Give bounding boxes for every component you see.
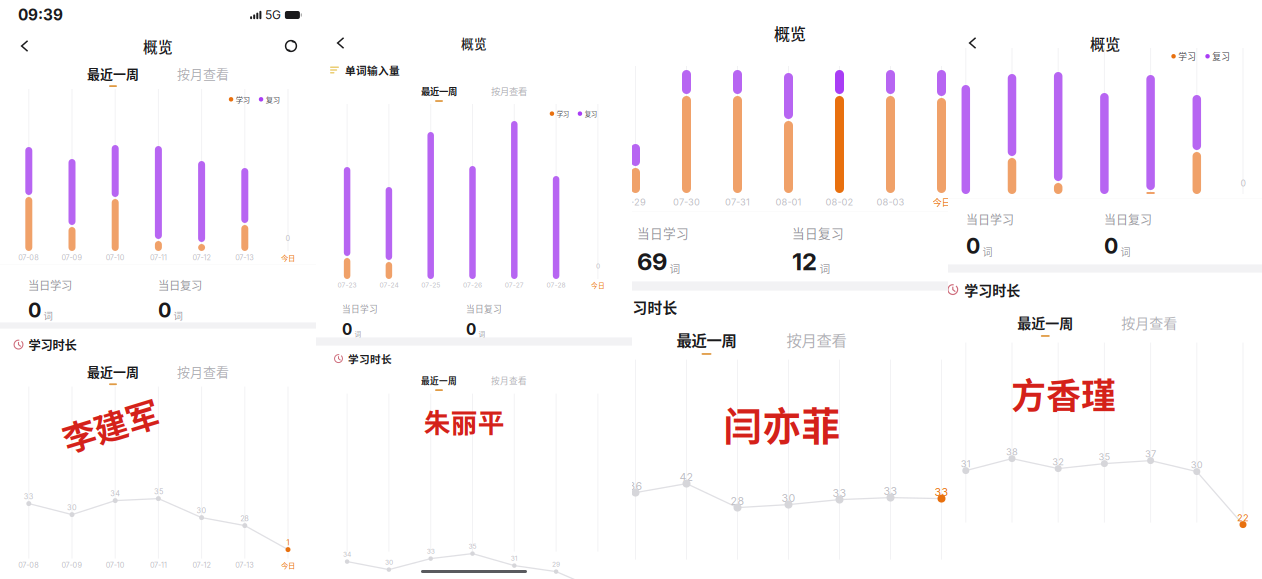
staticText: 学习 <box>236 94 250 105</box>
staticText: 复习 <box>1212 50 1230 62</box>
staticText: 当日复习 <box>792 224 844 242</box>
button[interactable]: 最近一周 <box>421 84 457 102</box>
staticText: 当日学习 <box>637 224 689 242</box>
staticText: 0 <box>966 233 980 259</box>
staticText: 07-12 <box>193 253 211 262</box>
button[interactable]: 返回 <box>12 33 38 59</box>
staticText: 李建军 <box>61 401 160 449</box>
staticText: 按月查看 <box>1121 312 1177 333</box>
staticText: 词 <box>669 260 680 276</box>
staticText: 0 <box>285 234 290 243</box>
button[interactable]: 按月查看 <box>786 328 846 355</box>
staticText: 学习时长 <box>964 279 1020 300</box>
staticText: 38 <box>1006 446 1018 457</box>
staticText: 33 <box>832 487 846 499</box>
staticText: 07-23 <box>338 281 357 289</box>
staticText: 按月查看 <box>491 374 527 387</box>
staticText: 词 <box>982 244 992 259</box>
staticText: 33 <box>427 547 435 555</box>
staticText: 0 <box>158 298 171 322</box>
staticText: 词 <box>354 329 361 339</box>
staticText: 30 <box>781 492 795 504</box>
staticText: 朱丽平 <box>424 402 505 440</box>
button[interactable]: 按月查看 <box>177 64 229 87</box>
button[interactable]: 最近一周 <box>87 362 139 385</box>
staticText: 07-24 <box>379 281 398 289</box>
staticText: 当日复习 <box>466 302 502 315</box>
button[interactable]: 最近一周 <box>87 64 139 87</box>
staticText: 31 <box>511 554 518 562</box>
staticText: 当日复习 <box>1104 211 1152 228</box>
staticText: 最近一周 <box>87 362 139 381</box>
staticText: 42 <box>679 471 693 483</box>
button[interactable]: 按月查看 <box>177 362 229 385</box>
button[interactable]: 最近一周 <box>421 374 457 391</box>
staticText: 07-08 <box>18 561 39 570</box>
staticText: 07-10 <box>106 253 125 262</box>
staticText: 今日 <box>281 560 295 570</box>
staticText: 当日学习 <box>28 277 72 293</box>
staticText: 07-11 <box>150 253 167 262</box>
staticText: 学习 <box>1178 50 1196 62</box>
staticText: 33 <box>24 492 34 501</box>
staticText: 09:39 <box>18 6 63 24</box>
staticText: 08-01 <box>775 196 801 208</box>
staticText: 07-26 <box>463 281 482 289</box>
staticText: 词 <box>478 329 485 339</box>
staticText: 当日学习 <box>966 211 1014 228</box>
button[interactable]: 按月查看 <box>491 84 527 102</box>
staticText: 复习 <box>585 109 597 118</box>
button[interactable]: 返回 <box>960 30 986 56</box>
staticText: 34 <box>110 489 120 498</box>
button[interactable]: 按月查看 <box>1121 312 1177 337</box>
staticText: 词 <box>43 309 52 322</box>
staticText: 07-11 <box>150 561 167 570</box>
staticText: 28 <box>240 514 249 523</box>
staticText: 12 <box>792 247 817 276</box>
staticText: 闫亦菲 <box>723 396 840 452</box>
staticText: 最近一周 <box>1017 312 1073 333</box>
staticText: 按月查看 <box>177 64 229 83</box>
staticText: 08-03 <box>876 196 904 208</box>
staticText: 35 <box>468 542 476 550</box>
button[interactable]: 按月查看 <box>491 374 527 391</box>
staticText: 0 <box>1240 178 1245 188</box>
staticText: 学习时长 <box>348 351 392 366</box>
staticText: 07-25 <box>421 281 440 289</box>
staticText: 07-13 <box>235 561 254 570</box>
staticText: 学习时长 <box>617 296 677 318</box>
staticText: 最近一周 <box>676 328 736 350</box>
staticText: 07-30 <box>673 196 700 208</box>
button[interactable]: 最近一周 <box>676 328 736 355</box>
staticText: 07-09 <box>61 253 82 262</box>
staticText: 28 <box>730 495 744 507</box>
staticText: 词 <box>173 309 182 322</box>
button[interactable]: 刷新 <box>278 33 304 59</box>
staticText: 0 <box>28 298 41 322</box>
staticText: 最近一周 <box>421 84 457 98</box>
staticText: 07-12 <box>193 561 211 570</box>
staticText: 36 <box>628 480 642 492</box>
staticText: 32 <box>1052 456 1064 467</box>
button[interactable]: 最近一周 <box>1017 312 1073 337</box>
staticText: 07-28 <box>547 281 566 289</box>
staticText: 29 <box>552 560 560 568</box>
staticText: 07-08 <box>18 253 39 262</box>
staticText: 概览 <box>1090 32 1120 54</box>
staticText: 学习时长 <box>28 336 76 353</box>
staticText: 1 <box>286 538 289 547</box>
staticText: 今日 <box>932 195 950 209</box>
staticText: 07-10 <box>106 561 125 570</box>
staticText: 07-13 <box>235 253 254 262</box>
staticText: 30 <box>197 506 207 515</box>
button[interactable]: 返回 <box>328 30 354 56</box>
staticText: 7-29 <box>625 196 646 208</box>
staticText: 0 <box>466 320 476 339</box>
staticText: 30 <box>385 558 393 566</box>
staticText: 最近一周 <box>87 64 139 83</box>
staticText: 30 <box>1191 459 1203 470</box>
staticText: 按月查看 <box>491 84 527 98</box>
staticText: 33 <box>883 485 897 497</box>
staticText: 33 <box>934 486 948 498</box>
